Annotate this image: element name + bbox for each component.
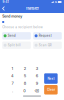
- staticText: 8: [24, 81, 26, 86]
- staticText: 9: [36, 81, 38, 86]
- staticText: 0: [23, 88, 26, 93]
- button[interactable]: 0: [19, 87, 31, 94]
- button[interactable]: Request: [33, 32, 62, 39]
- button[interactable]: Scan QR: [33, 41, 62, 49]
- staticText: 2: [24, 66, 26, 71]
- staticText: 9:41: [2, 0, 8, 4]
- staticText: Split bill: [8, 43, 21, 47]
- button[interactable]: Clear: [44, 85, 58, 94]
- staticText: .: [12, 88, 13, 93]
- button[interactable]: 9: [31, 80, 43, 87]
- button[interactable]: 6: [31, 72, 43, 80]
- staticText: 7: [11, 81, 13, 86]
- button[interactable]: 2: [19, 65, 31, 72]
- staticText: Clear: [47, 88, 55, 92]
- staticText: 5: [24, 73, 26, 78]
- button[interactable]: Back: [0, 4, 8, 13]
- staticText: Transfer: [25, 6, 38, 11]
- button[interactable]: Send: [2, 32, 31, 39]
- staticText: ⌫: [34, 88, 39, 93]
- staticText: Send money: [2, 14, 22, 18]
- button[interactable]: Split bill: [2, 41, 31, 49]
- staticText: 6: [36, 73, 38, 78]
- button[interactable]: Next: [44, 73, 58, 84]
- staticText: 1: [11, 66, 13, 71]
- button[interactable]: 1: [6, 65, 19, 72]
- button[interactable]: 8: [19, 80, 31, 87]
- staticText: Choose a recipient below: [2, 25, 43, 29]
- button[interactable]: 5: [19, 72, 31, 80]
- staticText: 4: [11, 73, 14, 78]
- button[interactable]: 4: [6, 72, 19, 80]
- staticText: Send: [8, 34, 16, 37]
- button[interactable]: ⌫: [31, 87, 43, 94]
- button[interactable]: 7: [6, 80, 19, 87]
- staticText: Scan QR: [39, 43, 52, 47]
- staticText: 3: [36, 66, 38, 71]
- staticText: Next: [47, 77, 54, 80]
- button[interactable]: 3: [31, 65, 43, 72]
- staticText: Request: [39, 34, 52, 37]
